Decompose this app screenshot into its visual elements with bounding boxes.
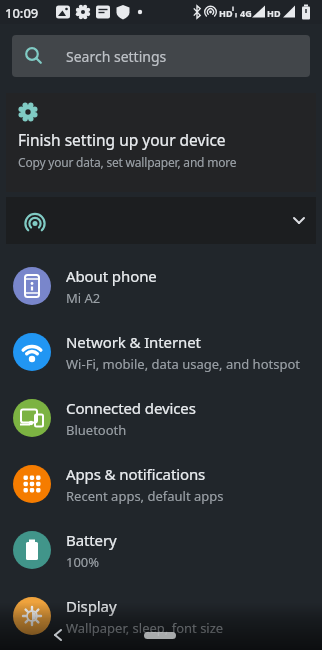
button[interactable] — [144, 632, 176, 639]
staticText: Display — [66, 596, 117, 616]
button[interactable]: Finish setting up your device — [6, 93, 316, 192]
staticText: Network & Internet — [66, 332, 201, 352]
button[interactable] — [6, 197, 316, 244]
staticText: Recent apps, default apps — [66, 487, 224, 505]
staticText: HD — [267, 7, 281, 19]
staticText: Copy your data, set wallpaper, and more — [18, 154, 237, 170]
staticText: Mi A2 — [66, 289, 101, 307]
staticText: Finish setting up your device — [18, 129, 226, 150]
staticText: Apps & notifications — [66, 464, 206, 484]
staticText: 4G — [240, 7, 252, 19]
staticText: Wi-Fi, mobile, data usage, and hotspot — [66, 355, 300, 373]
staticText: Wallpaper, sleep, font size — [66, 619, 224, 637]
button[interactable]: Network & Internet — [0, 319, 322, 385]
staticText: About phone — [66, 266, 157, 286]
button[interactable]: Battery — [0, 517, 322, 583]
button[interactable]: About phone — [0, 253, 322, 319]
staticText: Bluetooth — [66, 421, 127, 439]
staticText: Battery — [66, 530, 117, 550]
staticText: 100% — [66, 553, 100, 571]
staticText: Connected devices — [66, 398, 196, 418]
staticText: 10:09 — [5, 4, 39, 22]
staticText: HD — [219, 7, 233, 19]
staticText: Search settings — [66, 47, 167, 66]
button[interactable]: Search settings — [12, 35, 310, 77]
button[interactable]: Display — [0, 583, 322, 649]
button[interactable]: Apps & notifications — [0, 451, 322, 517]
button[interactable]: Connected devices — [0, 385, 322, 451]
